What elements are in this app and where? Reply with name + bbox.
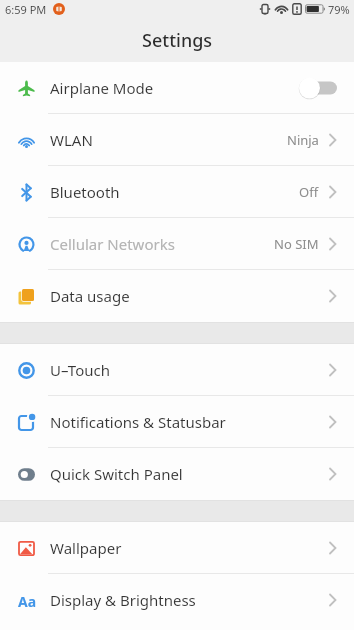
- staticText: No SIM: [274, 235, 319, 253]
- button[interactable]: Notifications & Statusbar: [0, 396, 354, 448]
- staticText: Aa: [18, 592, 35, 609]
- button[interactable]: Airplane Mode: [0, 62, 354, 114]
- staticText: 79%: [328, 2, 350, 17]
- button[interactable]: WLAN: [0, 114, 354, 166]
- button[interactable]: Cellular Networks: [0, 218, 354, 270]
- button[interactable]: Data usage: [0, 270, 354, 322]
- staticText: Ninja: [287, 131, 319, 149]
- staticText: U–Touch: [50, 360, 110, 380]
- staticText: Airplane Mode: [50, 78, 154, 98]
- staticText: Notifications & Statusbar: [50, 412, 226, 432]
- staticText: 6:59 PM: [5, 2, 47, 17]
- button[interactable]: Aa: [0, 574, 354, 626]
- staticText: Off: [299, 183, 319, 201]
- button[interactable]: Bluetooth: [0, 166, 354, 218]
- staticText: Quick Switch Panel: [50, 464, 183, 484]
- staticText: Cellular Networks: [50, 234, 175, 254]
- staticText: Display & Brightness: [50, 590, 196, 610]
- staticText: WLAN: [50, 130, 93, 150]
- staticText: Bluetooth: [50, 182, 120, 202]
- button[interactable]: U–Touch: [0, 344, 354, 396]
- button[interactable]: Quick Switch Panel: [0, 448, 354, 500]
- button[interactable]: Wallpaper: [0, 522, 354, 574]
- staticText: Data usage: [50, 286, 130, 306]
- staticText: Settings: [142, 28, 213, 53]
- staticText: Wallpaper: [50, 538, 122, 558]
